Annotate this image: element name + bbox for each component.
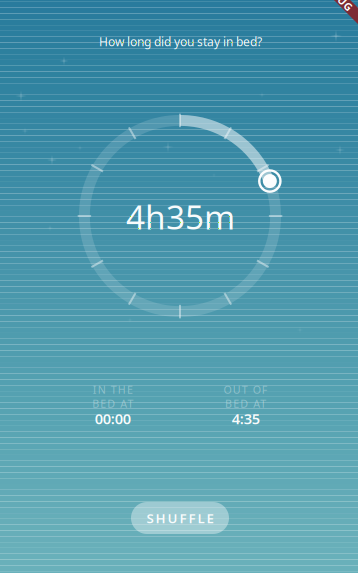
staticText: How long did you stay in bed? [99, 33, 262, 49]
staticText: DEBUG [319, 0, 357, 1]
staticText: 4:35 [232, 409, 260, 428]
staticText: OUT OF [224, 382, 268, 397]
staticText: 4h35m [126, 194, 235, 239]
staticText: 00:00 [95, 409, 131, 428]
staticText: BED AT [92, 396, 133, 411]
staticText: SHUFFLE [146, 509, 213, 527]
button[interactable]: SHUFFLE [131, 502, 229, 534]
staticText: BED AT [225, 396, 266, 411]
staticText: IN THE [93, 382, 133, 397]
